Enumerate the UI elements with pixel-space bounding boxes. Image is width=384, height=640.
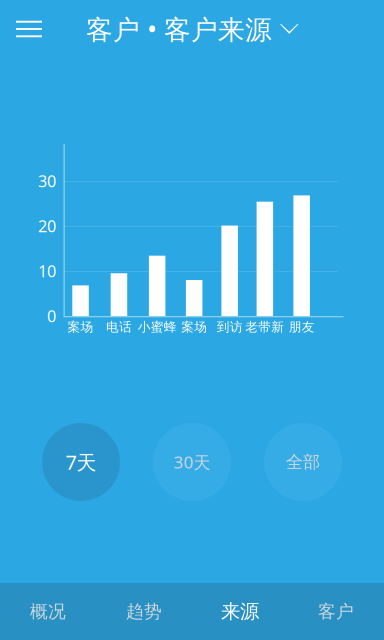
staticText: 来源: [221, 599, 259, 624]
button[interactable]: 全部: [264, 423, 342, 501]
staticText: 趋势: [126, 600, 162, 623]
staticText: 概况: [30, 600, 66, 623]
staticText: 30: [38, 170, 56, 192]
staticText: 朋友: [289, 319, 315, 335]
staticText: 10: [38, 260, 56, 282]
button[interactable]: 30天: [153, 423, 231, 501]
staticText: 案场: [67, 319, 93, 335]
button[interactable]: 趋势: [96, 583, 192, 640]
staticText: 客户: [318, 600, 354, 623]
staticText: 30天: [173, 450, 210, 474]
staticText: 0: [47, 305, 56, 327]
button[interactable]: 7天: [42, 423, 120, 501]
button[interactable]: 来源: [192, 583, 288, 640]
staticText: 电话: [106, 319, 132, 335]
staticText: 小蜜蜂: [138, 319, 177, 335]
button[interactable]: 客户 • 客户来源: [86, 4, 298, 54]
button[interactable]: 客户: [288, 583, 384, 640]
button[interactable]: Menu: [16, 4, 64, 54]
staticText: 案场: [181, 319, 207, 335]
staticText: 7天: [65, 448, 96, 476]
staticText: 全部: [286, 451, 320, 473]
staticText: 老带新: [245, 319, 284, 335]
button[interactable]: 概况: [0, 583, 96, 640]
staticText: 到访: [217, 319, 243, 335]
staticText: 20: [38, 215, 56, 237]
staticText: 客户 • 客户来源: [86, 11, 272, 47]
